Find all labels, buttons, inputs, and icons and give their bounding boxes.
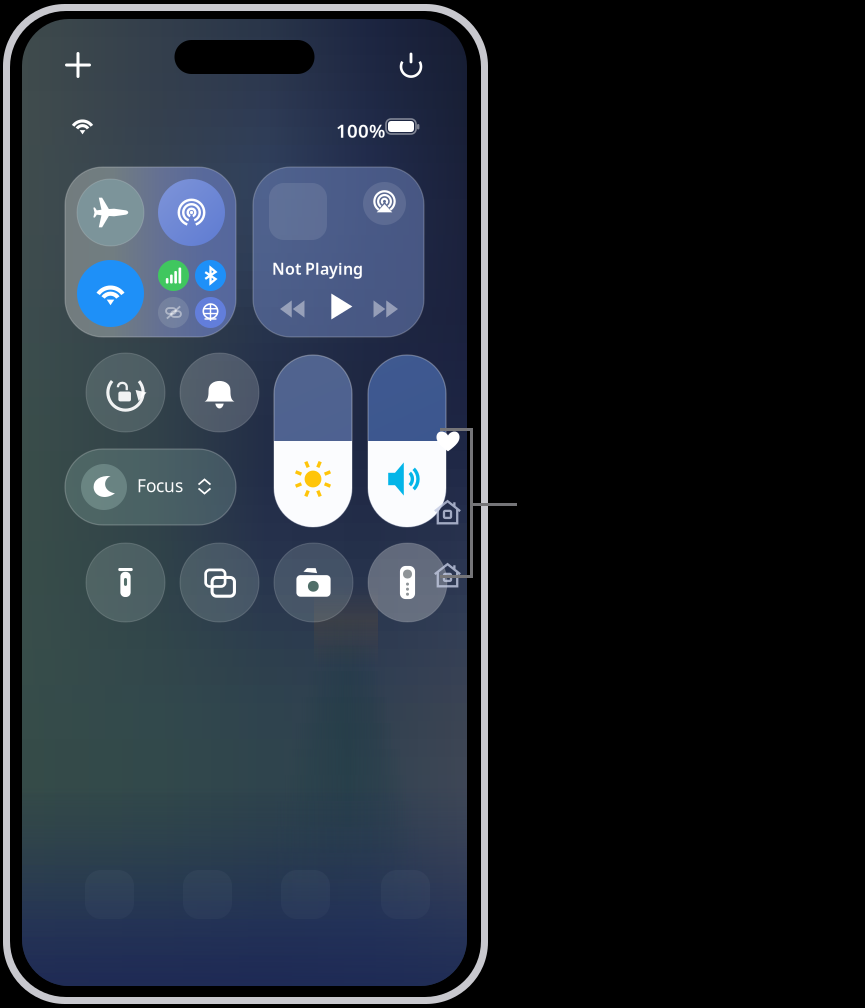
button[interactable]: Bluetooth [195, 260, 226, 291]
button[interactable]: Focus [65, 449, 236, 525]
button[interactable]: Camera [274, 543, 353, 622]
button[interactable]: Rotation Lock [86, 353, 165, 432]
button[interactable]: AirPlay [363, 182, 406, 225]
button[interactable]: Personal Hotspot [158, 297, 189, 328]
button[interactable]: AirDrop [158, 179, 225, 246]
staticText: Not Playing [272, 258, 363, 279]
button[interactable]: Rewind [279, 296, 305, 322]
button[interactable]: Cellular Data [158, 260, 189, 291]
button[interactable]: Airplane Mode [77, 179, 144, 246]
button[interactable]: Screen Mirroring [180, 543, 259, 622]
button[interactable]: Flashlight [86, 543, 165, 622]
button[interactable]: Play [327, 293, 354, 320]
button[interactable]: Brightness [274, 355, 352, 527]
button[interactable]: Wi‑Fi [77, 260, 144, 327]
button[interactable]: Apple TV Remote [368, 543, 447, 622]
button[interactable]: VPN [195, 297, 226, 328]
staticText: 100% [336, 118, 385, 143]
button[interactable]: Fast Forward [373, 296, 399, 322]
button[interactable]: Power Off [389, 43, 433, 87]
button[interactable]: Add a Control [56, 43, 100, 87]
button[interactable]: Volume [368, 355, 446, 527]
button[interactable]: Silent Mode [180, 353, 259, 432]
staticText: Focus [137, 474, 183, 497]
